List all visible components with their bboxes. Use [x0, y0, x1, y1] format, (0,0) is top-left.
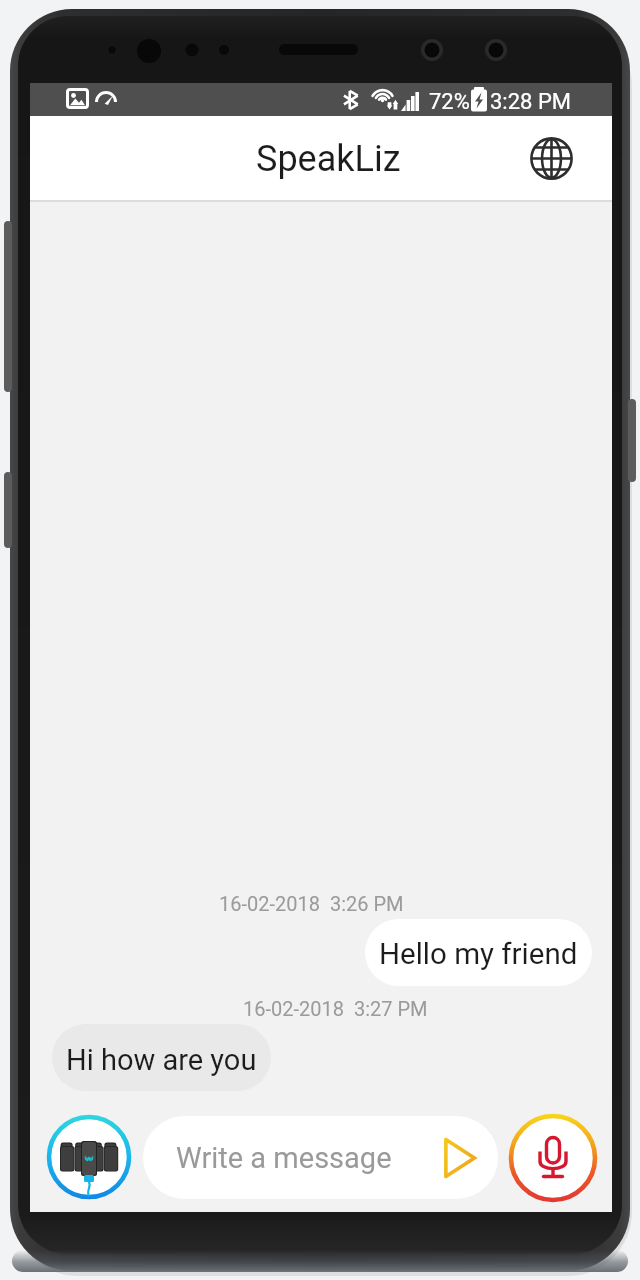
button[interactable]: Connect device: [46, 1114, 132, 1200]
staticText: SpeakLiz: [256, 138, 401, 180]
staticText: 3:28 PM: [490, 89, 571, 115]
staticText: Hello my friend: [379, 937, 578, 972]
button[interactable]: Change language: [522, 129, 580, 187]
staticText: Write a message: [176, 1141, 392, 1175]
staticText: 72%: [429, 89, 470, 115]
button[interactable]: Hi how are you: [52, 1024, 271, 1091]
staticText: 16-02-2018 3:27 PM: [243, 997, 428, 1020]
staticText: Hi how are you: [66, 1043, 257, 1077]
button[interactable]: Send: [433, 1135, 479, 1181]
button[interactable]: Voice input: [508, 1113, 598, 1203]
button[interactable]: Hello my friend: [365, 919, 592, 986]
staticText: 16-02-2018 3:26 PM: [219, 892, 404, 915]
button[interactable]: Write a message: [143, 1116, 498, 1199]
